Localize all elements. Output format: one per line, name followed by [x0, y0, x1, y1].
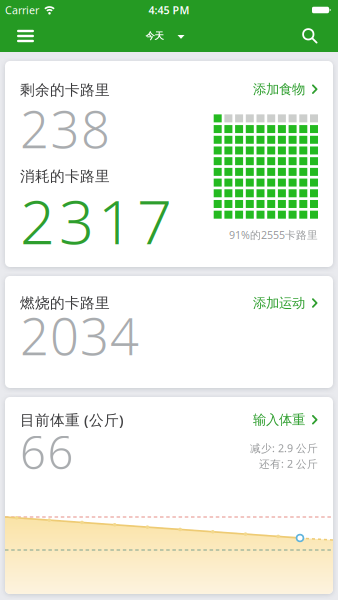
- button[interactable]: Menu: [0, 24, 46, 48]
- staticText: 输入体重: [253, 412, 305, 428]
- staticText: 91%的2555卡路里: [229, 228, 318, 242]
- staticText: 目前体重 (公斤): [20, 410, 124, 429]
- staticText: 还有: 2 公斤: [259, 457, 318, 471]
- staticText: Carrier: [5, 3, 39, 17]
- staticText: 238: [20, 95, 110, 162]
- staticText: 2034: [20, 302, 139, 369]
- button[interactable]: Search: [292, 22, 338, 50]
- staticText: 减少: 2.9 公斤: [250, 441, 318, 455]
- staticText: 燃烧的卡路里: [20, 294, 110, 312]
- staticText: 66: [20, 421, 73, 482]
- button[interactable]: 添加运动: [253, 295, 318, 311]
- staticText: 添加运动: [253, 295, 305, 311]
- staticText: 添加食物: [253, 81, 305, 97]
- staticText: 剩余的卡路里: [20, 81, 110, 99]
- staticText: 2317: [20, 180, 172, 261]
- button[interactable]: 输入体重: [253, 412, 318, 428]
- button[interactable]: Select date: [149, 30, 188, 42]
- staticText: 今天: [145, 30, 163, 42]
- staticText: 4:45 PM: [148, 3, 189, 17]
- staticText: 消耗的卡路里: [20, 167, 110, 185]
- button[interactable]: 添加食物: [253, 81, 318, 97]
